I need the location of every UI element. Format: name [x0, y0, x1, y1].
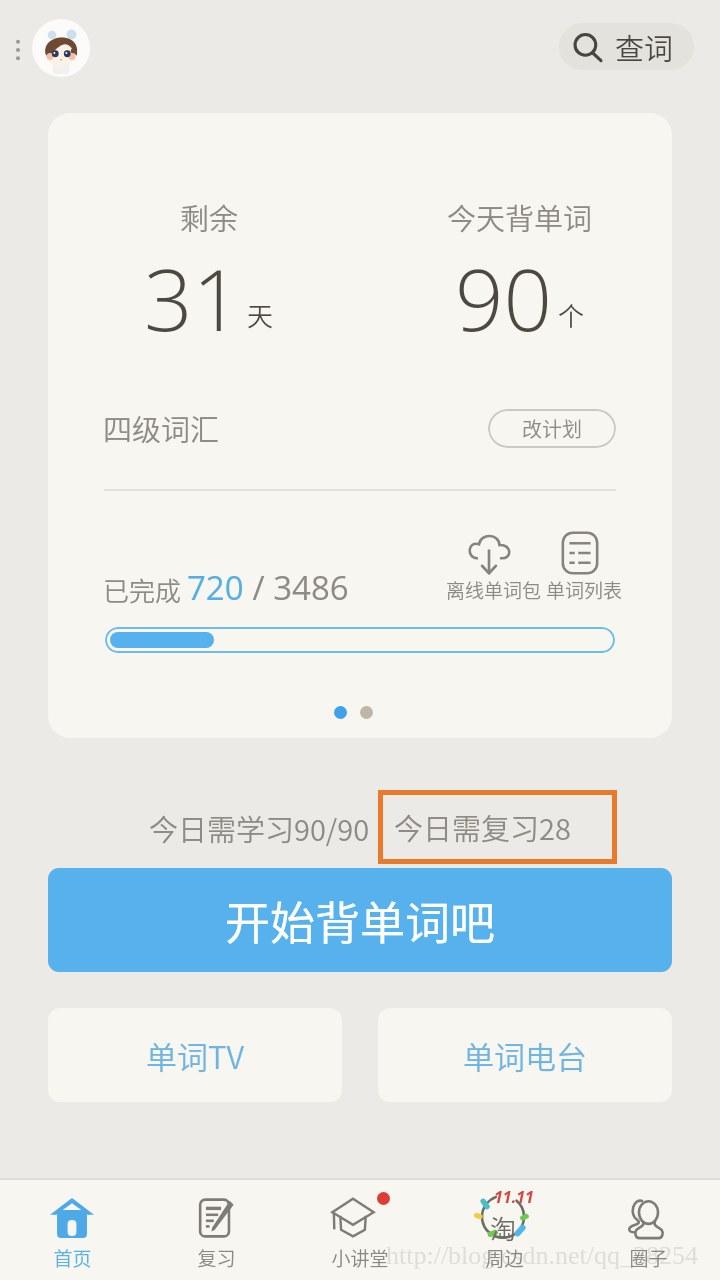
staticText: 个	[558, 296, 585, 334]
staticText: 天	[247, 296, 274, 334]
button[interactable]: Profile	[32, 19, 90, 77]
staticText: 查词	[615, 26, 674, 68]
staticText: 小讲堂	[331, 1244, 389, 1272]
staticText: 31	[144, 240, 242, 356]
staticText: 改计划	[522, 414, 582, 443]
staticText: 今天背单词	[447, 196, 593, 238]
staticText: 90	[455, 240, 553, 356]
staticText: 复习	[197, 1244, 236, 1272]
button[interactable]: 今日需复习28	[378, 790, 617, 864]
button[interactable]: 查词	[559, 23, 694, 70]
staticText: 11.11	[494, 1186, 534, 1208]
staticText: 淘	[490, 1209, 517, 1247]
button[interactable]: 改计划	[488, 409, 616, 448]
staticText: 720	[187, 565, 244, 610]
button[interactable]: 淘	[432, 1196, 576, 1280]
button[interactable]	[434, 531, 544, 575]
button[interactable]: 单词TV	[48, 1008, 342, 1102]
staticText: http://blog.csdn.net/qq_28254	[386, 1241, 698, 1270]
staticText: 圈子	[629, 1244, 668, 1272]
staticText: 单词电台	[463, 1033, 587, 1078]
staticText: 单词列表	[546, 576, 623, 604]
staticText: / 3486	[244, 565, 349, 610]
staticText: 四级词汇	[103, 407, 220, 449]
button[interactable]: 首页	[0, 1196, 144, 1280]
staticText: 今日需复习28	[394, 806, 571, 848]
button[interactable]: 今日需学习90/90	[142, 800, 376, 856]
button[interactable]: 圈子	[576, 1196, 720, 1280]
staticText: 周边	[485, 1244, 524, 1272]
button[interactable]: 复习	[144, 1196, 288, 1280]
button[interactable]	[525, 531, 635, 575]
staticText: 今日需学习90/90	[149, 807, 370, 849]
staticText: 离线单词包	[446, 576, 542, 604]
staticText: 单词TV	[146, 1033, 245, 1078]
staticText: 首页	[53, 1244, 92, 1272]
button[interactable]: 开始背单词吧	[48, 868, 672, 972]
staticText: 已完成	[103, 571, 187, 609]
staticText: 开始背单词吧	[225, 888, 496, 953]
button[interactable]: More options	[4, 30, 32, 70]
button[interactable]: 小讲堂	[288, 1196, 432, 1280]
button[interactable]: 单词电台	[378, 1008, 672, 1102]
staticText: 剩余	[180, 196, 239, 238]
